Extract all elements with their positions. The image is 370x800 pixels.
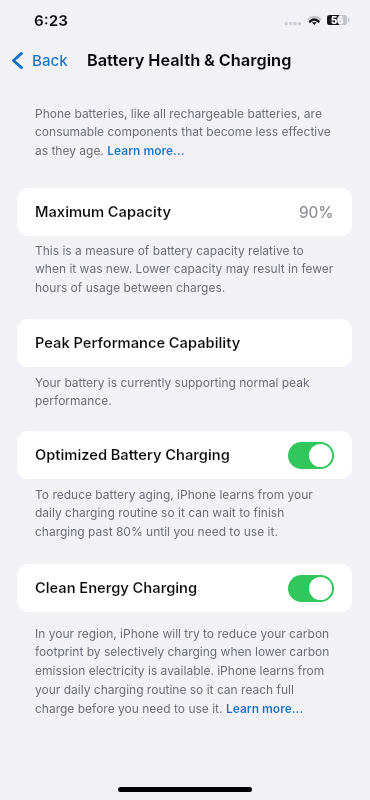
staticText: This is a measure of battery capacity re… [35,243,336,295]
staticText: Battery Health & Charging [87,50,292,70]
button[interactable]: Clean Energy Charging [288,575,334,602]
staticText: 6:23 [34,11,68,29]
staticText: Back [32,51,68,69]
staticText: Your battery is currently supporting nor… [35,375,336,408]
staticText: In your region, iPhone will try to reduc… [35,626,336,716]
staticText: To reduce battery aging, iPhone learns f… [35,487,336,539]
staticText: 5 [331,15,338,25]
button[interactable]: Peak Performance Capability [17,319,352,367]
button[interactable]: Maximum Capacity [17,188,352,236]
button[interactable]: Optimized Battery Charging [17,431,352,479]
staticText: Maximum Capacity [35,203,171,221]
staticText: Optimized Battery Charging [35,446,230,464]
button[interactable]: Back [6,46,74,74]
staticText: Peak Performance Capability [35,334,241,352]
button[interactable]: Clean Energy Charging [17,564,352,612]
staticText: Clean Energy Charging [35,579,198,597]
staticText: 6 [337,15,344,25]
staticText: 90% [299,203,334,222]
button[interactable]: Optimized Battery Charging [288,442,334,469]
staticText: Phone batteries, like all rechargeable b… [35,106,336,158]
